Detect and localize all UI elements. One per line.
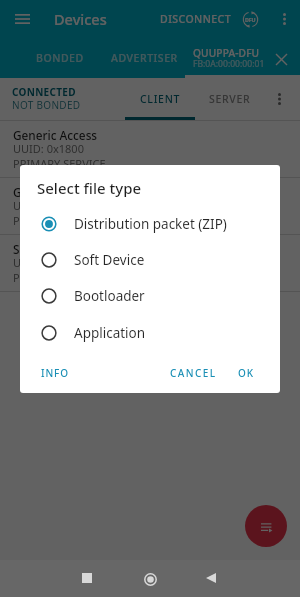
staticText: PRIMARY SERVICE (13, 270, 106, 285)
button[interactable]: Recents (71, 562, 103, 594)
button[interactable]: QUUPPA-DFU (185, 38, 300, 78)
staticText: ADVERTISER (111, 51, 178, 65)
staticText: Application (74, 324, 146, 342)
staticText: UUID: 0000FE59-1212-EFDE-1523-785FEABCD1… (13, 255, 266, 270)
staticText: Generic Attribute (13, 184, 111, 200)
button[interactable]: Application (20, 314, 280, 351)
staticText: CONNECTED (12, 85, 76, 99)
staticText: Generic Access (13, 127, 98, 143)
button[interactable]: More options (270, 5, 298, 33)
staticText: PRIMARY SERVICE (13, 213, 106, 228)
staticText: NOT BONDED (12, 98, 81, 112)
button[interactable]: Distribution packet (ZIP) (20, 205, 280, 242)
button[interactable]: Close tab (269, 47, 293, 71)
staticText: BONDED (36, 51, 84, 65)
button[interactable]: Home (134, 563, 166, 595)
staticText: CANCEL (170, 366, 217, 380)
staticText: PRIMARY SERVICE (13, 156, 106, 171)
staticText: INFO (41, 366, 69, 380)
staticText: Soft Device (74, 251, 145, 269)
staticText: CLIENT (140, 92, 181, 106)
button[interactable]: BONDED (27, 38, 93, 78)
button[interactable]: Generic Access (0, 121, 300, 178)
staticText: QUUPPA-DFU (193, 46, 260, 60)
staticText: Distribution packet (ZIP) (74, 215, 227, 233)
button[interactable]: Generic Attribute (0, 178, 300, 235)
staticText: SERVER (209, 92, 251, 106)
staticText: Bootloader (74, 287, 145, 305)
button[interactable]: Secure DFU Service (0, 235, 300, 292)
button[interactable]: OK (232, 359, 260, 387)
button[interactable]: CANCEL (164, 359, 223, 387)
staticText: DFU (245, 16, 256, 23)
staticText: UUID: 0x1800 (13, 141, 84, 156)
button[interactable]: CLIENT (125, 78, 195, 119)
button[interactable]: SERVER (196, 78, 264, 119)
staticText: Devices (54, 9, 107, 29)
button[interactable]: Soft Device (20, 241, 280, 278)
staticText: Secure DFU Service (13, 241, 121, 257)
staticText: UUID: 0x1801 (13, 198, 84, 213)
button[interactable]: DISCONNECT (154, 6, 238, 32)
button[interactable]: Back (195, 562, 227, 594)
button[interactable]: Show log (245, 505, 287, 547)
button[interactable]: INFO (35, 359, 75, 387)
staticText: DISCONNECT (160, 12, 232, 26)
staticText: OK (238, 366, 254, 380)
button[interactable]: Bootloader (20, 277, 280, 314)
button[interactable]: Device firmware update (236, 5, 264, 33)
staticText: FB:0A:00:00:00:01 (193, 58, 265, 70)
button[interactable]: More options (266, 78, 292, 119)
button[interactable]: ADVERTISER (100, 38, 188, 78)
staticText: Select file type (37, 178, 142, 198)
button[interactable]: Open navigation drawer (3, 0, 41, 38)
